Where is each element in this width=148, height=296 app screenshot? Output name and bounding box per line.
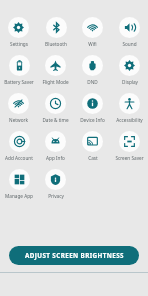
button[interactable]: Bluetooth [45, 17, 67, 55]
staticText: Sound [122, 41, 137, 47]
button[interactable]: App Info [45, 131, 66, 169]
staticText: App Info [46, 155, 65, 161]
button[interactable]: Battery Saver [4, 55, 34, 93]
staticText: DND [87, 79, 98, 85]
staticText: Screen Saver [115, 155, 144, 161]
button[interactable]: Privacy [45, 169, 66, 207]
staticText: Device Info [80, 117, 105, 123]
staticText: Date & time [42, 117, 69, 123]
staticText: Accessibility [116, 117, 143, 123]
button[interactable]: Settings [8, 17, 29, 55]
staticText: Add Account [5, 155, 33, 161]
button[interactable]: Sound [119, 17, 140, 55]
staticText: Flight Mode [42, 79, 69, 85]
staticText: ADJUST SCREEN BRIGHTNESS [25, 251, 124, 260]
button[interactable]: Device Info [80, 93, 105, 131]
button[interactable]: Screen Saver [115, 131, 144, 169]
staticText: Display [122, 79, 138, 85]
button[interactable]: Wifi [82, 17, 103, 55]
staticText: Privacy [48, 193, 64, 199]
staticText: Battery Saver [4, 79, 34, 85]
staticText: Network [9, 117, 28, 123]
staticText: Settings [10, 41, 28, 47]
staticText: Wifi [88, 41, 97, 47]
button[interactable]: ADJUST SCREEN BRIGHTNESS [9, 246, 139, 265]
button[interactable]: Accessibility [116, 93, 143, 131]
button[interactable]: Add Account [5, 131, 33, 169]
staticText: Cast [88, 155, 98, 161]
button[interactable]: Flight Mode [42, 55, 69, 93]
button[interactable]: Display [119, 55, 140, 93]
button[interactable]: Network [8, 93, 29, 131]
button[interactable]: Manage App [5, 169, 33, 207]
button[interactable]: Cast [82, 131, 103, 169]
button[interactable]: DND [82, 55, 103, 93]
staticText: Manage App [5, 193, 33, 199]
staticText: Bluetooth [45, 41, 67, 47]
button[interactable]: Date & time [42, 93, 69, 131]
